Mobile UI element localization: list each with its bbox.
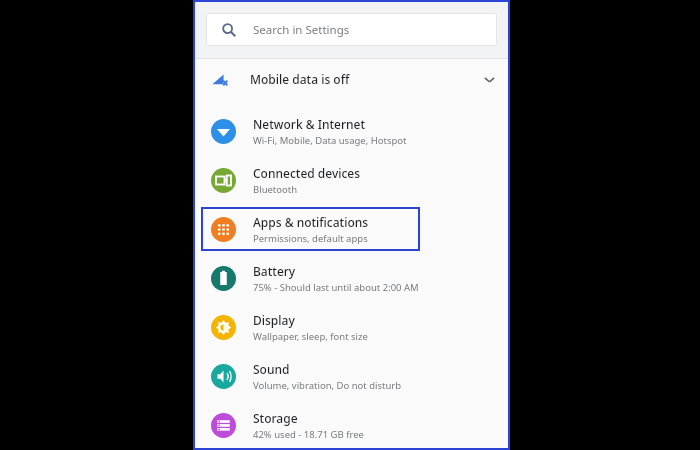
other: Expand (483, 73, 496, 86)
staticText: Permissions, default apps (253, 232, 368, 245)
staticText: Sound (253, 361, 290, 377)
button[interactable]: Sound (193, 352, 510, 401)
button[interactable]: Network & Internet (193, 107, 510, 156)
staticText: Network & Internet (253, 116, 366, 132)
staticText: Display (253, 312, 295, 328)
button[interactable]: Apps & notifications (193, 205, 510, 254)
staticText: Volume, vibration, Do not disturb (253, 379, 402, 392)
staticText: 75% - Should last until about 2:00 AM (253, 281, 419, 294)
staticText: Search in Settings (253, 22, 350, 38)
button[interactable]: Battery (193, 254, 510, 303)
staticText: Wallpaper, sleep, font size (253, 330, 368, 343)
button[interactable]: Storage (193, 401, 510, 450)
other: Search (222, 23, 236, 37)
staticText: Battery (253, 263, 296, 279)
button[interactable]: Connected devices (193, 156, 510, 205)
staticText: Wi-Fi, Mobile, Data usage, Hotspot (253, 134, 407, 147)
staticText: Storage (253, 410, 298, 426)
staticText: Apps & notifications (253, 214, 369, 230)
button[interactable]: Search (206, 13, 497, 46)
button[interactable]: Display (193, 303, 510, 352)
staticText: Connected devices (253, 165, 361, 181)
staticText: Bluetooth (253, 183, 298, 196)
button[interactable]: Mobile data is off (193, 59, 510, 99)
staticText: Mobile data is off (250, 71, 350, 87)
staticText: 42% used - 18.71 GB free (253, 428, 364, 441)
